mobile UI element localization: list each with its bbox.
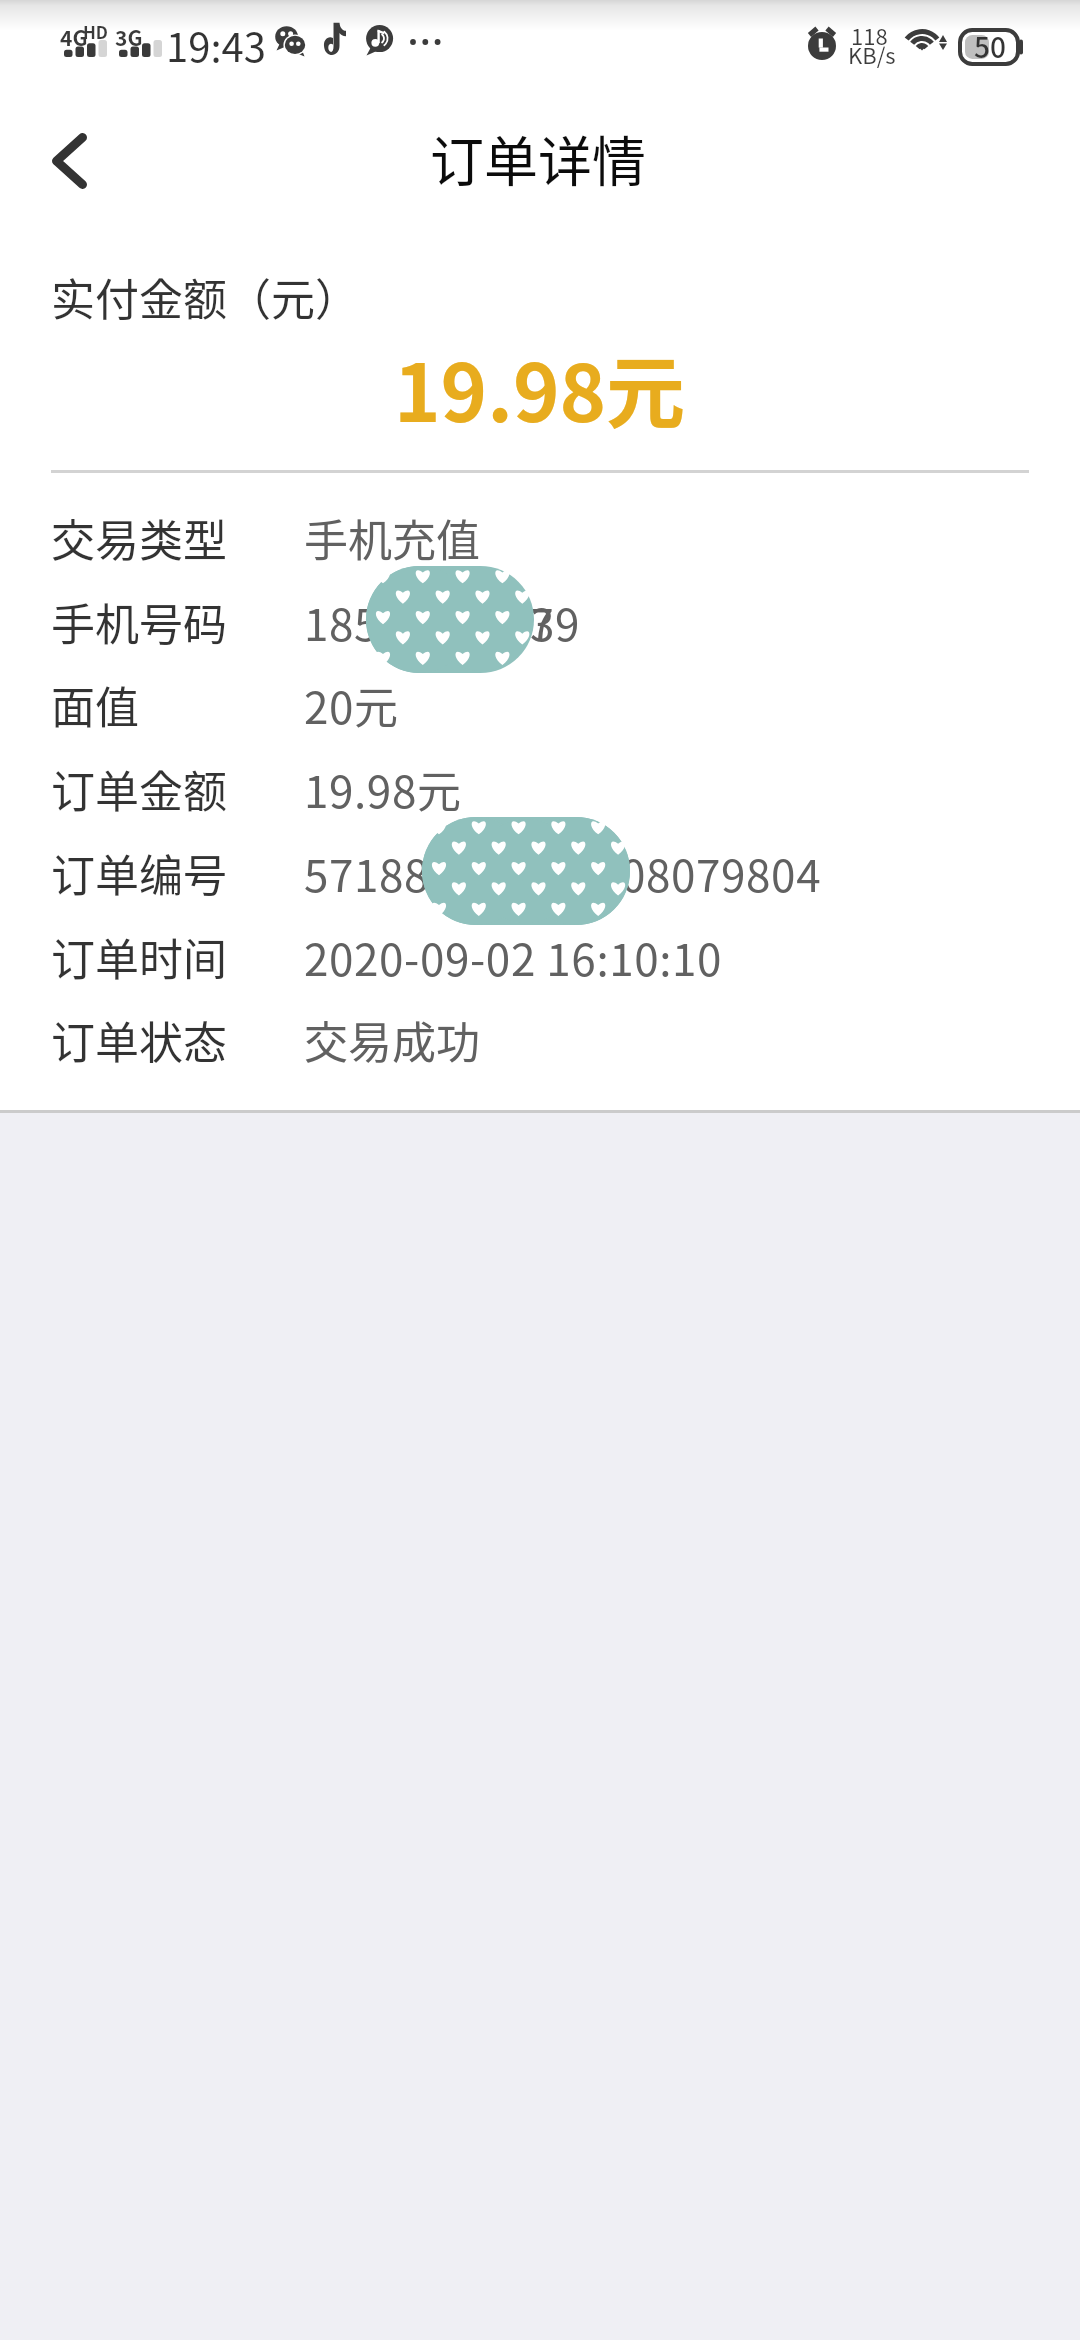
- staticText: 手机充值: [304, 506, 480, 570]
- staticText: 订单详情: [430, 119, 646, 197]
- staticText: 4G: [60, 22, 88, 52]
- staticText: 手机号码: [51, 590, 227, 654]
- button[interactable]: 订单时间: [0, 924, 1080, 1008]
- staticText: 面值: [51, 673, 139, 737]
- staticText: 20元: [304, 673, 399, 737]
- button[interactable]: 订单编号: [0, 840, 1080, 924]
- staticText: 1851234567: [304, 590, 555, 654]
- staticText: KB/s: [848, 38, 896, 70]
- staticText: 19:43: [166, 16, 266, 74]
- staticText: 50: [974, 26, 1006, 67]
- staticText: 19.98元: [394, 330, 686, 444]
- staticText: 实付金额（元）: [51, 265, 359, 329]
- staticText: 订单编号: [51, 841, 227, 905]
- staticText: 08079804: [621, 841, 822, 905]
- button[interactable]: 订单金额: [0, 756, 1080, 840]
- button[interactable]: 交易类型: [0, 505, 1080, 589]
- button[interactable]: Back: [19, 111, 119, 211]
- button[interactable]: 手机号码: [0, 589, 1080, 673]
- staticText: 交易成功: [304, 1008, 480, 1072]
- staticText: 118: [851, 19, 888, 51]
- staticText: 订单状态: [51, 1008, 227, 1072]
- staticText: 交易类型: [51, 506, 227, 570]
- staticText: 订单金额: [51, 757, 227, 821]
- staticText: HD: [83, 19, 109, 44]
- staticText: 2020-09-02 16:10:10: [304, 925, 723, 989]
- staticText: 3G: [115, 22, 143, 52]
- staticText: 19.98元: [304, 757, 462, 821]
- staticText: 57188123456: [304, 841, 580, 905]
- staticText: 39: [530, 590, 581, 654]
- button[interactable]: 面值: [0, 672, 1080, 756]
- button[interactable]: 订单状态: [0, 1007, 1080, 1091]
- staticText: 订单时间: [51, 925, 227, 989]
